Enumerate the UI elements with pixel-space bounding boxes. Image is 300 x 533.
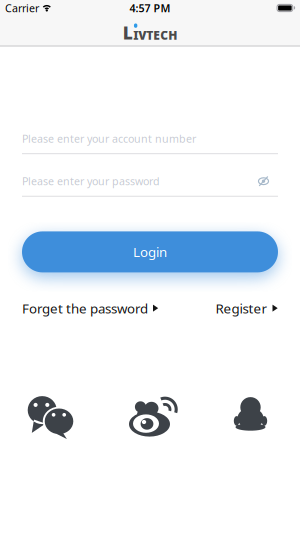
staticText: 4:57 PM (129, 1, 170, 15)
staticText: IVTECH (133, 27, 177, 43)
staticText: L (123, 21, 133, 44)
staticText: Register (215, 299, 267, 317)
staticText: Carrier (5, 1, 39, 15)
staticText: Forget the password (22, 299, 148, 317)
staticText: Login (133, 243, 167, 261)
staticText: Please enter your password (22, 174, 160, 188)
staticText: Please enter your account number (22, 131, 196, 146)
